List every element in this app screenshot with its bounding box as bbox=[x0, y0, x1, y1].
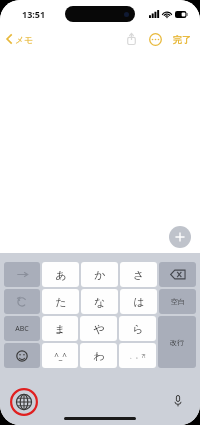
staticText: メモ bbox=[15, 34, 34, 45]
button[interactable]: メモ bbox=[6, 28, 34, 50]
button[interactable] bbox=[4, 289, 40, 314]
button[interactable]: 、。?! bbox=[119, 343, 156, 368]
button[interactable]: ABC bbox=[4, 316, 40, 341]
staticText: さ bbox=[133, 268, 145, 282]
staticText: わ bbox=[93, 349, 105, 363]
button[interactable]: Dictation bbox=[168, 391, 188, 411]
staticText: な bbox=[94, 295, 106, 309]
button[interactable]: ら bbox=[119, 316, 156, 341]
staticText: や bbox=[93, 322, 105, 336]
staticText: は bbox=[133, 295, 145, 309]
button[interactable]: 空白 bbox=[159, 289, 196, 314]
staticText: た bbox=[55, 295, 67, 309]
button[interactable] bbox=[159, 262, 196, 287]
button[interactable]: ま bbox=[42, 316, 78, 341]
staticText: あ bbox=[55, 268, 67, 282]
button[interactable]: は bbox=[120, 289, 157, 314]
button[interactable]: た bbox=[42, 289, 79, 314]
button[interactable] bbox=[4, 262, 40, 287]
button[interactable] bbox=[4, 343, 40, 368]
staticText: 、。?! bbox=[129, 352, 146, 360]
button[interactable]: 完了 bbox=[173, 34, 191, 45]
button[interactable]: か bbox=[81, 262, 118, 287]
button[interactable]: あ bbox=[42, 262, 79, 287]
button[interactable]: わ bbox=[80, 343, 117, 368]
staticText: ^_^ bbox=[54, 350, 67, 361]
staticText: ABC bbox=[15, 324, 29, 334]
button[interactable]: More options bbox=[147, 31, 163, 47]
staticText: ら bbox=[132, 322, 144, 336]
staticText: 空白 bbox=[171, 297, 185, 306]
button[interactable]: さ bbox=[120, 262, 157, 287]
staticText: 改行 bbox=[170, 338, 184, 347]
staticText: ま bbox=[54, 322, 66, 336]
button[interactable]: Next keyboard bbox=[10, 388, 38, 416]
button[interactable]: ^_^ bbox=[42, 343, 78, 368]
button[interactable]: や bbox=[80, 316, 117, 341]
staticText: 13:51 bbox=[22, 8, 46, 20]
button[interactable]: な bbox=[81, 289, 118, 314]
button[interactable]: Share bbox=[124, 30, 138, 48]
staticText: か bbox=[94, 268, 106, 282]
button[interactable]: 改行 bbox=[158, 316, 196, 368]
button[interactable]: Add attachment bbox=[169, 226, 191, 248]
